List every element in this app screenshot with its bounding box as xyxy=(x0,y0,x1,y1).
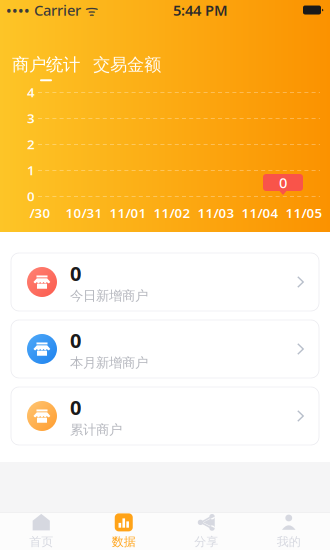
staticText: 首页 xyxy=(29,534,53,549)
staticText: 3 xyxy=(27,109,35,127)
staticText: 4 xyxy=(27,83,35,101)
button[interactable]: 商户统计 xyxy=(12,54,80,81)
button[interactable]: 分享 xyxy=(165,514,247,548)
staticText: 11/03 xyxy=(197,204,234,222)
staticText: 11/01 xyxy=(109,204,146,222)
staticText: 5:44 PM xyxy=(173,0,228,20)
button[interactable]: 0 xyxy=(11,387,319,445)
staticText: /30 xyxy=(29,204,50,222)
staticText: 0 xyxy=(70,260,81,287)
staticText: 2 xyxy=(27,135,35,153)
button[interactable]: 交易金额 xyxy=(93,54,161,81)
staticText: 0 xyxy=(70,327,81,354)
staticText: 11/02 xyxy=(153,204,190,222)
staticText: 数据 xyxy=(112,534,136,549)
button[interactable]: 我的 xyxy=(247,514,330,548)
button[interactable]: 数据 xyxy=(82,514,165,548)
staticText: 累计商户 xyxy=(70,422,122,438)
staticText: 商户统计 xyxy=(12,54,80,75)
staticText: 1 xyxy=(27,161,35,179)
button[interactable]: 首页 xyxy=(0,514,82,548)
staticText: 11/04 xyxy=(241,204,278,222)
staticText: 分享 xyxy=(194,534,218,549)
button[interactable]: 0 xyxy=(11,320,319,378)
staticText: 10/31 xyxy=(65,204,102,222)
staticText: 0 xyxy=(279,173,287,192)
staticText: 本月新增商户 xyxy=(70,355,148,371)
staticText: 交易金额 xyxy=(93,54,161,75)
staticText: 0 xyxy=(27,187,35,205)
staticText: 11/05 xyxy=(285,204,322,222)
staticText: 0 xyxy=(70,394,81,421)
button[interactable]: 0 xyxy=(11,253,319,311)
staticText: 我的 xyxy=(277,534,301,549)
staticText: 今日新增商户 xyxy=(70,288,148,304)
staticText: •••• Carrier ᯤ xyxy=(6,0,98,20)
